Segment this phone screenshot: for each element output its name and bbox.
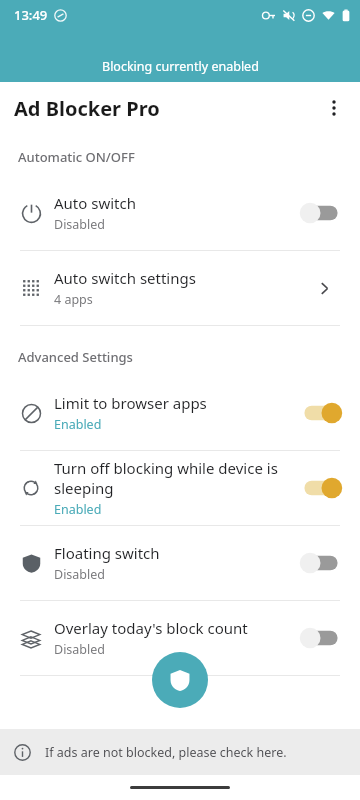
staticText: Auto switch settings	[54, 268, 196, 288]
staticText: Overlay today's block count	[54, 618, 248, 638]
button[interactable]: Disabled toggle	[298, 199, 344, 227]
button[interactable]: More options	[314, 88, 354, 128]
staticText: Floating switch	[54, 543, 160, 563]
button[interactable]: Floating switch	[0, 526, 360, 600]
button[interactable]: Auto switch settings	[0, 251, 360, 325]
staticText: Blocking currently enabled	[102, 58, 259, 75]
button[interactable]: Disabled toggle	[298, 624, 344, 652]
button[interactable]: Enabled toggle	[298, 399, 344, 427]
staticText: 4 apps	[54, 291, 93, 308]
staticText: Auto switch	[54, 193, 136, 213]
staticText: If ads are not blocked, please check her…	[45, 744, 287, 761]
button[interactable]: Enabled toggle	[298, 474, 344, 502]
button[interactable]: Limit to browser apps	[0, 376, 360, 450]
staticText: Enabled	[54, 416, 102, 433]
staticText: Enabled	[54, 501, 102, 518]
staticText: Automatic ON/OFF	[18, 148, 135, 166]
button[interactable]: Open auto switch settings	[304, 268, 344, 308]
button[interactable]: Toggle blocking	[152, 652, 208, 708]
staticText: 13:49	[14, 6, 48, 24]
staticText: Disabled	[54, 216, 106, 233]
button[interactable]: If ads are not blocked, please check her…	[0, 729, 360, 775]
button[interactable]: Turn off blocking while device is sleepi…	[0, 451, 360, 525]
staticText: Limit to browser apps	[54, 393, 207, 413]
button[interactable]: Disabled toggle	[298, 549, 344, 577]
button[interactable]: Auto switch	[0, 176, 360, 250]
staticText: Advanced Settings	[18, 348, 133, 366]
staticText: Turn off blocking while device is sleepi…	[54, 458, 290, 498]
staticText: Disabled	[54, 566, 106, 583]
button[interactable]: Overlay today's block count	[0, 601, 360, 675]
staticText: Disabled	[54, 641, 106, 658]
staticText: Ad Blocker Pro	[14, 95, 160, 122]
